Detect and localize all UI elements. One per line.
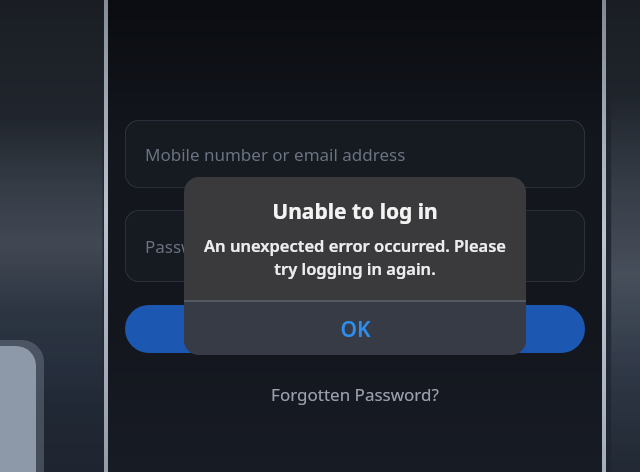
button[interactable]: Password bbox=[125, 210, 585, 282]
button[interactable]: Mobile number or email address bbox=[125, 120, 585, 188]
staticText: Mobile number or email address bbox=[145, 143, 406, 166]
button[interactable]: Forgotten Password? bbox=[108, 379, 602, 409]
staticText: Unable to log in bbox=[194, 197, 516, 226]
button[interactable]: Log in bbox=[125, 305, 585, 353]
staticText: An unexpected error occurred. Please try… bbox=[194, 234, 516, 280]
staticText: OK bbox=[340, 315, 371, 344]
staticText: Password bbox=[145, 235, 222, 258]
button[interactable]: OK bbox=[184, 302, 526, 355]
staticText: Forgotten Password? bbox=[271, 383, 439, 406]
